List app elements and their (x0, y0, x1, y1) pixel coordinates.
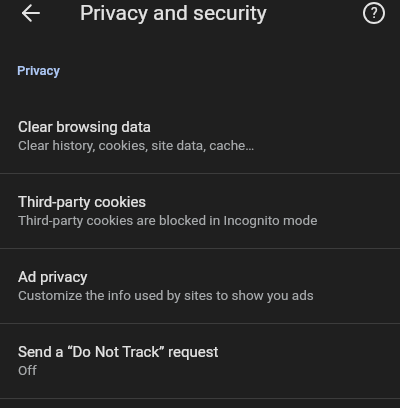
staticText: Third-party cookies (18, 193, 147, 211)
button[interactable]: Ad privacy (0, 248, 400, 323)
staticText: Privacy and security (80, 1, 267, 26)
staticText: Ad privacy (18, 268, 88, 286)
staticText: Third-party cookies are blocked in Incog… (18, 212, 318, 228)
button[interactable]: Help and feedback (359, 0, 389, 28)
staticText: Customize the info used by sites to show… (18, 287, 314, 303)
staticText: Privacy (17, 63, 60, 78)
staticText: Off (18, 362, 37, 378)
button[interactable]: Navigate up (16, 0, 46, 28)
staticText: Clear history, cookies, site data, cache… (18, 137, 255, 153)
staticText: ? (371, 5, 378, 21)
button[interactable]: Third-party cookies (0, 173, 400, 248)
staticText: Send a “Do Not Track” request (18, 343, 219, 361)
button[interactable]: Send a “Do Not Track” request (0, 323, 400, 398)
staticText: Clear browsing data (18, 118, 152, 136)
button[interactable]: Clear browsing data (0, 98, 400, 173)
